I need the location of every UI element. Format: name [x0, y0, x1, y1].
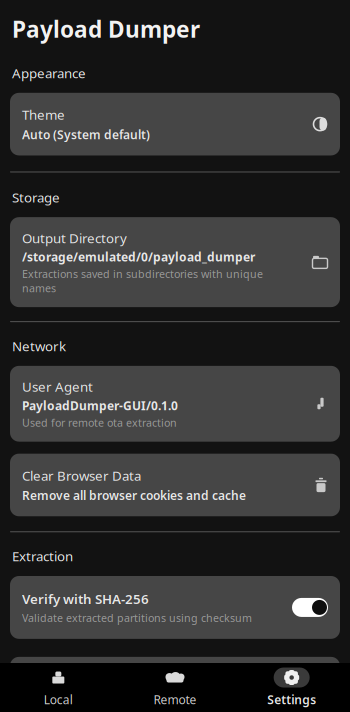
staticText: Limit concurrent extractions: [22, 671, 209, 689]
button[interactable]: Limit concurrent extractions: [10, 657, 340, 712]
staticText: Local: [44, 691, 73, 707]
button[interactable]: Clear Browser Data: [10, 454, 340, 516]
button[interactable]: Remote: [117, 661, 233, 712]
staticText: Auto (System default): [22, 126, 150, 142]
staticText: Storage: [12, 188, 60, 206]
button[interactable]: Verify with SHA-256: [10, 576, 340, 639]
button[interactable]: Theme: [10, 93, 340, 155]
staticText: Extractions saved in subdirectories with…: [22, 267, 263, 295]
staticText: Used for remote ota extraction: [22, 415, 177, 430]
button[interactable]: Local: [0, 661, 117, 712]
staticText: Remove all browser cookies and cache: [22, 487, 246, 503]
staticText: Remote: [153, 691, 196, 707]
staticText: Extraction: [12, 547, 73, 565]
staticText: Validate extracted partitions using chec…: [22, 611, 252, 625]
staticText: Appearance: [12, 64, 86, 82]
staticText: /storage/emulated/0/payload_dumper: [22, 249, 255, 265]
staticText: Network: [12, 337, 66, 355]
staticText: Controls how many partitions extract sim…: [22, 692, 209, 712]
staticText: Payload Dumper: [12, 14, 200, 44]
button[interactable]: User Agent: [10, 366, 340, 442]
staticText: Theme: [22, 106, 65, 123]
staticText: PayloadDumper-GUI/0.1.0: [22, 397, 178, 413]
staticText: Clear Browser Data: [22, 467, 141, 484]
button[interactable]: Output Directory: [10, 217, 340, 307]
button[interactable]: Settings: [233, 661, 350, 712]
staticText: Settings: [267, 691, 316, 707]
staticText: Output Directory: [22, 229, 127, 247]
staticText: User Agent: [22, 378, 93, 395]
staticText: Verify with SHA-256: [22, 590, 149, 608]
